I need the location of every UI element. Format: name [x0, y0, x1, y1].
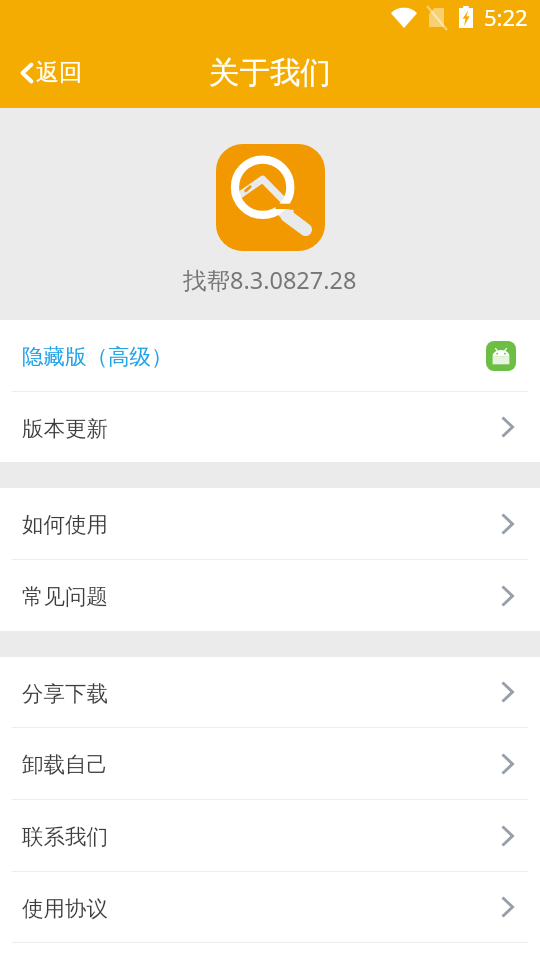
button[interactable]: 隐藏版（高级） — [0, 320, 540, 391]
staticText: 如何使用 — [22, 511, 108, 538]
staticText: 5:22 — [484, 2, 528, 32]
staticText: 关于我们 — [209, 54, 331, 92]
button[interactable]: 联系我们 — [0, 800, 540, 871]
staticText: 使用协议 — [22, 895, 108, 922]
button[interactable]: 如何使用 — [0, 488, 540, 559]
button[interactable]: 返回 — [0, 52, 96, 101]
staticText: 联系我们 — [22, 823, 108, 850]
staticText: 隐藏版（高级） — [22, 343, 173, 370]
staticText: 返回 — [36, 58, 82, 87]
button[interactable]: 使用协议 — [0, 872, 540, 942]
staticText: 常见问题 — [22, 583, 108, 610]
staticText: 版本更新 — [22, 415, 108, 442]
button[interactable]: 分享下载 — [0, 657, 540, 727]
button[interactable]: 卸载自己 — [0, 728, 540, 799]
button[interactable]: 常见问题 — [0, 560, 540, 631]
staticText: 卸载自己 — [22, 751, 108, 778]
staticText: 找帮8.3.0827.28 — [183, 264, 357, 296]
other: Android app — [486, 341, 516, 371]
button[interactable]: 版本更新 — [0, 392, 540, 462]
staticText: 分享下载 — [22, 680, 108, 707]
